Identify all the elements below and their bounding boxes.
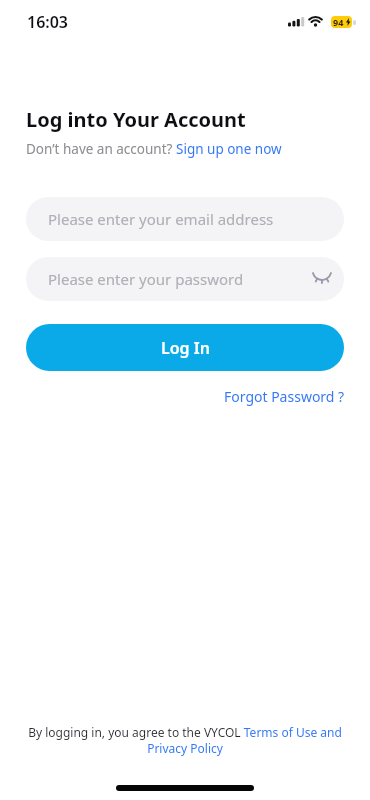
button[interactable]: Log In	[26, 324, 344, 371]
staticText: Please enter your email address	[48, 209, 274, 229]
staticText: Please enter your password	[48, 269, 244, 289]
staticText: 94	[333, 16, 344, 28]
staticText: Log In	[161, 337, 210, 359]
staticText: 16:03	[27, 11, 69, 33]
staticText: Don’t have an account?	[26, 140, 176, 158]
button[interactable]: Please enter your email address	[26, 197, 344, 241]
button[interactable]: Forgot Password ?	[224, 387, 345, 406]
button[interactable]: By logging in, you agree to the VYCOL Te…	[28, 724, 342, 756]
staticText: Log into Your Account	[26, 106, 246, 133]
button[interactable]: Please enter your password	[26, 257, 344, 301]
button[interactable]: Sign up one now	[176, 140, 282, 158]
